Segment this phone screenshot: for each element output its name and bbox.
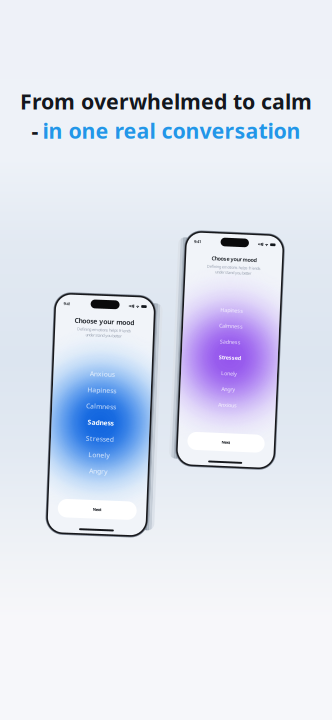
button[interactable]: Stressed [52,431,150,447]
staticText: Choose your mood [208,255,253,262]
button[interactable]: Anxious [52,366,150,382]
button[interactable]: Sadness [52,414,150,431]
button[interactable]: Hapiness [182,302,278,318]
staticText: Anxious [88,370,113,378]
button[interactable]: Stressed [182,349,278,365]
button[interactable]: Calmness [182,318,278,334]
button[interactable]: Sadness [182,334,278,349]
button[interactable]: Lonely [52,447,150,463]
button[interactable]: Lonely [182,365,278,381]
staticText: Angry [223,385,237,393]
staticText: Defining emotions helps friends [74,327,128,333]
staticText: Next [96,507,105,512]
staticText: Sadness [220,338,241,345]
staticText: 9:41 [189,240,196,245]
staticText: understand you better [212,270,249,275]
staticText: Hapiness [219,306,242,314]
staticText: in one real conversation [42,116,300,145]
button[interactable]: Next [61,500,140,519]
staticText: Angry [91,467,110,476]
staticText: Stressed [219,354,241,361]
staticText: understand you better [82,333,119,338]
button[interactable]: Calmness [52,398,150,414]
staticText: Anxious [221,401,240,408]
staticText: Choose your mood [71,317,131,326]
staticText: 9:41 [59,302,66,308]
staticText: Lonely [90,451,112,459]
staticText: Next [226,439,235,445]
button[interactable]: Anxious [182,397,278,413]
staticText: - [31,116,38,145]
staticText: Calmness [86,402,116,411]
staticText: Sadness [88,418,114,427]
staticText: Stressed [87,434,115,443]
staticText: Hapiness [86,386,115,395]
staticText: Calmness [218,322,242,329]
button[interactable]: Angry [182,381,278,397]
staticText: From overwhelmed to calm [20,87,312,115]
button[interactable]: Angry [52,463,150,479]
button[interactable]: Hapiness [52,382,150,398]
button[interactable]: Next [191,433,269,451]
staticText: Lonely [222,370,238,377]
staticText: Defining emotions helps friends [203,264,257,270]
